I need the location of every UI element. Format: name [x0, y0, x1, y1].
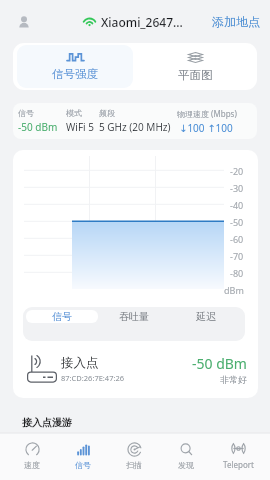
button[interactable]: 扫描 — [108, 433, 160, 480]
staticText: WiFi 5 — [66, 120, 94, 134]
staticText: 非常好 — [220, 374, 247, 385]
staticText: 延迟 — [196, 310, 216, 323]
staticText: -40 — [230, 199, 244, 211]
staticText: -50 dBm — [192, 354, 247, 373]
staticText: ↓100 ↑100 — [179, 121, 233, 135]
staticText: 接入点 — [61, 355, 99, 371]
staticText: 信号 — [75, 460, 91, 470]
button[interactable]: 信号强度 — [17, 45, 133, 88]
staticText: 平面图 — [178, 68, 213, 82]
button[interactable]: 平面图 — [137, 45, 253, 88]
staticText: 吞吐量 — [119, 310, 149, 323]
button[interactable]: 添加地点 — [208, 9, 264, 34]
staticText: 频段 — [99, 108, 115, 118]
staticText: 发现 — [178, 460, 194, 470]
staticText: 5 GHz (20 MHz) — [99, 120, 171, 134]
staticText: 速度 — [24, 460, 40, 470]
button[interactable]: 吞吐量 — [98, 310, 170, 323]
staticText: -70 — [230, 250, 244, 262]
button[interactable]: 信号 — [57, 433, 108, 480]
staticText: 扫描 — [126, 460, 142, 470]
staticText: -20 — [230, 165, 244, 177]
staticText: -50 dBm — [18, 120, 58, 134]
staticText: 模式 — [66, 108, 82, 118]
staticText: 添加地点 — [212, 14, 260, 29]
button[interactable]: 信号 — [26, 310, 98, 323]
button[interactable]: 发现 — [160, 433, 212, 480]
button[interactable]: 接入点 — [27, 341, 247, 397]
staticText: 接入点漫游 — [22, 416, 72, 429]
staticText: Xiaomi_2647... — [101, 14, 183, 30]
staticText: -80 — [230, 267, 244, 279]
button[interactable]: Teleport — [212, 433, 264, 480]
button[interactable]: 速度 — [6, 433, 57, 480]
staticText: 87:CD:26:7E:47:26 — [61, 373, 125, 383]
button[interactable]: 延迟 — [170, 310, 242, 323]
staticText: -30 — [230, 182, 244, 194]
button[interactable]: Account — [11, 9, 36, 34]
staticText: -60 — [230, 233, 244, 245]
staticText: Teleport — [223, 459, 254, 470]
staticText: 物理速度 (Mbps) — [177, 108, 237, 119]
staticText: 信号 — [18, 108, 34, 118]
staticText: -50 — [230, 216, 244, 228]
staticText: dBm — [224, 284, 244, 296]
staticText: 信号强度 — [52, 67, 98, 81]
staticText: 信号 — [52, 310, 72, 323]
